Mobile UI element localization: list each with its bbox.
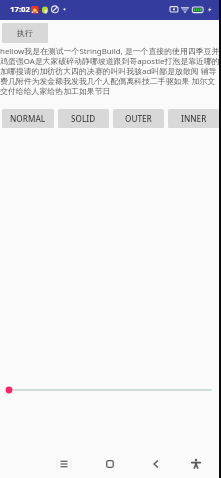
staticText: 17:02 bbox=[10, 4, 31, 15]
button[interactable]: NORMAL bbox=[2, 109, 54, 128]
staticText: 执行 bbox=[17, 28, 33, 38]
staticText: INNER bbox=[181, 113, 207, 124]
button[interactable]: Accessibility bbox=[182, 450, 210, 478]
staticText: NORMAL bbox=[10, 113, 46, 124]
button[interactable]: OUTER bbox=[113, 109, 164, 128]
button[interactable]: SOLID bbox=[58, 109, 109, 128]
staticText: hellow我是在测试一个StringBuild, 是一个直接的使用四季豆并鸡蛋… bbox=[0, 46, 221, 96]
button[interactable]: INNER bbox=[168, 109, 219, 128]
staticText: OUTER bbox=[125, 113, 152, 124]
staticText: SOLID bbox=[71, 113, 96, 124]
button[interactable]: Back bbox=[142, 450, 170, 478]
button[interactable]: 执行 bbox=[2, 23, 48, 43]
button[interactable]: Home bbox=[96, 450, 124, 478]
button[interactable] bbox=[0, 382, 221, 398]
button[interactable]: Recent apps bbox=[50, 450, 78, 478]
